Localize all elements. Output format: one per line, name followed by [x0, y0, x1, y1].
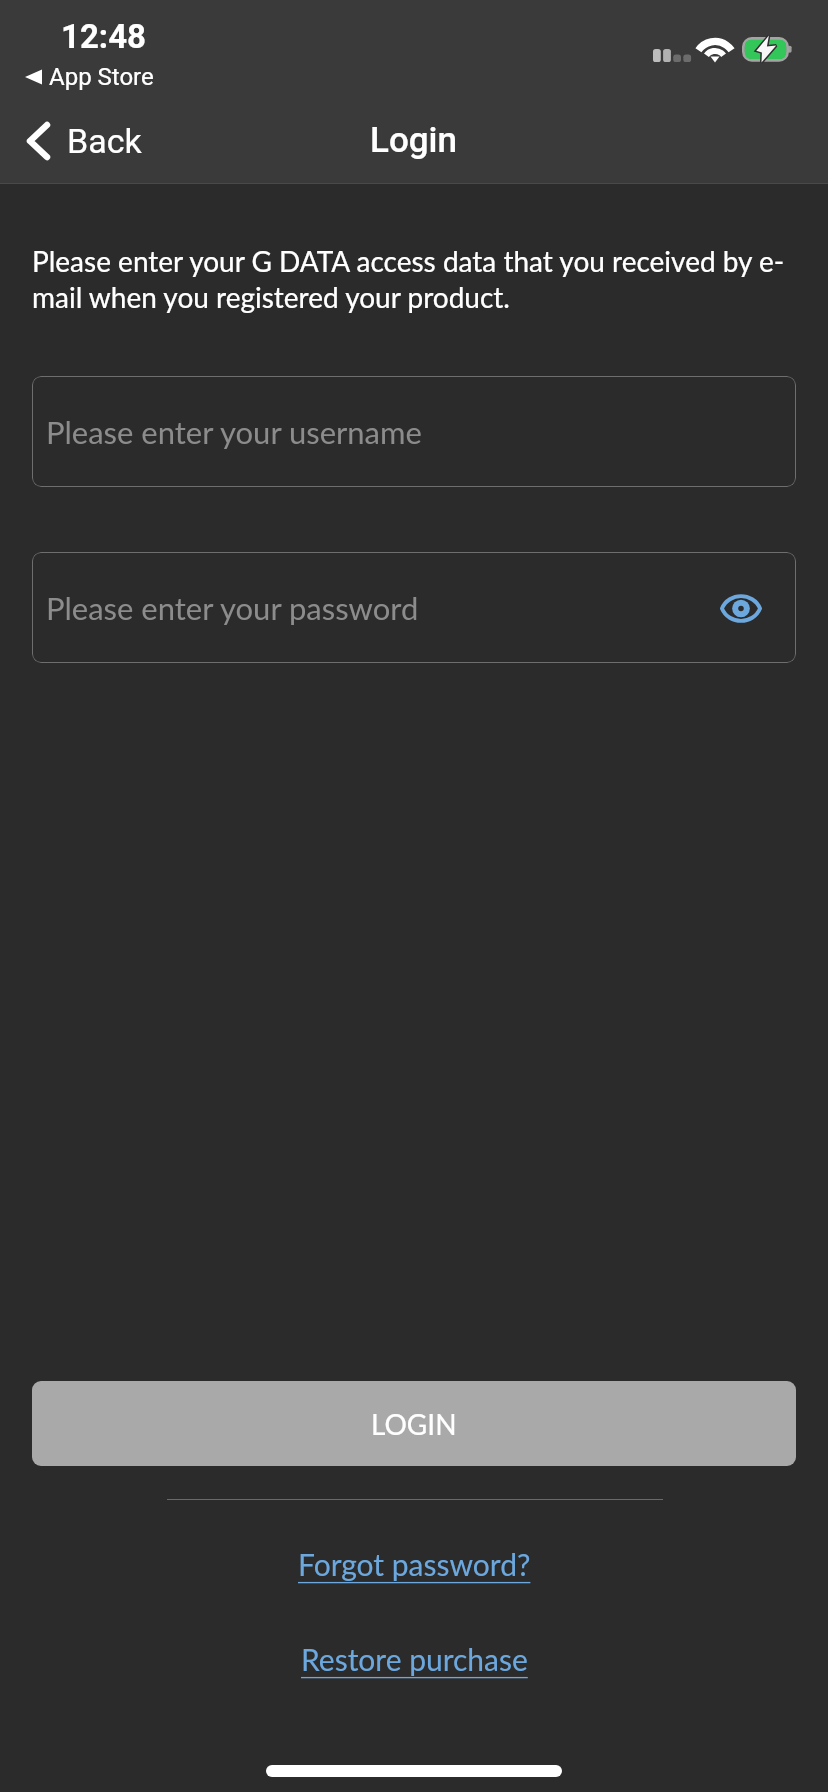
button[interactable]: Please enter your password [32, 552, 796, 663]
staticText: Please enter your password [46, 589, 419, 626]
staticText: Restore purchase [301, 1641, 528, 1677]
button[interactable]: Forgot password? [274, 1540, 555, 1588]
button[interactable]: Please enter your username [32, 376, 796, 487]
staticText: Please enter your username [46, 413, 422, 450]
button[interactable]: Show password [710, 577, 772, 639]
staticText: LOGIN [371, 1407, 457, 1441]
button[interactable]: Back [0, 108, 160, 174]
staticText: 12:48 [61, 17, 147, 56]
staticText: App Store [49, 63, 154, 91]
button[interactable]: LOGIN [32, 1381, 796, 1466]
staticText: Login [370, 120, 458, 161]
staticText: Back [67, 121, 142, 161]
button[interactable]: Restore purchase [277, 1635, 552, 1683]
staticText: Forgot password? [298, 1546, 531, 1582]
staticText: Please enter your G DATA access data tha… [32, 244, 798, 314]
